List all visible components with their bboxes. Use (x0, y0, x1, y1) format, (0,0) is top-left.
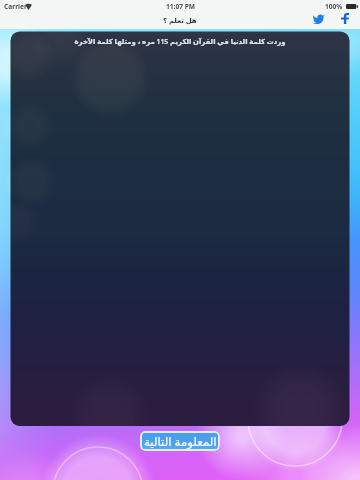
button[interactable]: وردت كلمة الدنيا في القرآن الكريم 115 مر… (10, 32, 350, 426)
button[interactable]: Share on Facebook (334, 11, 355, 26)
staticText: 11:07 PM (166, 2, 195, 11)
button[interactable]: Share on Twitter (308, 11, 329, 26)
staticText: 100% (325, 2, 343, 11)
button[interactable]: المعلومة التالية (140, 431, 220, 451)
staticText: وردت كلمة الدنيا في القرآن الكريم 115 مر… (20, 37, 340, 46)
staticText: المعلومة التالية (144, 433, 217, 449)
staticText: هل تعلم ؟ (163, 16, 197, 26)
staticText: Carrier (4, 2, 27, 11)
